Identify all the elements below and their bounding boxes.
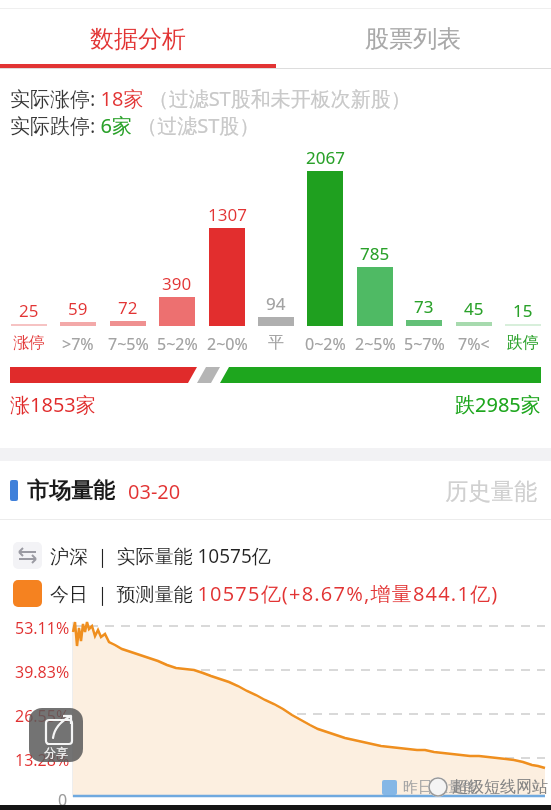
staticText: 沪深 ｜ 实际量能 10575亿 <box>50 543 271 569</box>
staticText: 59 <box>68 297 88 320</box>
button[interactable]: 数据分析 <box>0 14 275 64</box>
staticText: 涨1853家 <box>10 391 96 415</box>
staticText: 25 <box>19 299 39 322</box>
staticText: 15 <box>513 299 533 322</box>
staticText: 平 <box>268 333 284 353</box>
staticText: 5~2% <box>157 333 198 355</box>
staticText: 26.55% <box>15 705 70 723</box>
staticText: 390 <box>162 272 192 295</box>
staticText: 73 <box>414 295 434 318</box>
staticText: >7% <box>62 333 94 355</box>
staticText: 数据分析 <box>90 24 186 54</box>
staticText: 跌2985家 <box>455 391 541 415</box>
staticText: 5~7% <box>404 333 445 355</box>
staticText: 53.11% <box>15 617 70 635</box>
staticText: 03-20 <box>128 478 181 504</box>
staticText: 7%< <box>458 333 490 355</box>
staticText: 2~0% <box>207 333 248 355</box>
button[interactable]: 分享 <box>29 708 83 762</box>
staticText: 1307 <box>208 203 247 226</box>
staticText: 0~2% <box>305 333 346 355</box>
staticText: 实际跌停: 6家 （过滤ST股） <box>10 112 260 137</box>
staticText: 72 <box>118 296 138 319</box>
staticText: 涨停 <box>13 333 45 353</box>
staticText: 45 <box>464 297 484 320</box>
staticText: 0 <box>58 789 68 807</box>
staticText: 分享 <box>44 745 68 760</box>
staticText: 2~5% <box>355 333 396 355</box>
staticText: 股票列表 <box>365 24 461 54</box>
staticText: 超级短线网站 <box>452 777 548 797</box>
staticText: 39.83% <box>15 661 70 679</box>
staticText: 13.28% <box>15 749 70 767</box>
button[interactable]: 股票列表 <box>275 14 551 64</box>
staticText: 2067 <box>306 146 345 169</box>
staticText: 昨日总量能 <box>403 778 478 797</box>
staticText: 历史量能 <box>445 477 537 504</box>
button[interactable]: 历史量能 <box>420 477 537 504</box>
staticText: 市场量能 <box>27 477 115 504</box>
staticText: 7~5% <box>108 333 149 355</box>
staticText: 今日 ｜ 预测量能 10575亿(+8.67%,增量844.1亿) <box>50 580 499 607</box>
staticText: 785 <box>360 242 390 265</box>
staticText: 跌停 <box>507 333 539 353</box>
staticText: 94 <box>266 292 286 315</box>
staticText: 实际涨停: 18家 （过滤ST股和未开板次新股） <box>10 85 411 110</box>
